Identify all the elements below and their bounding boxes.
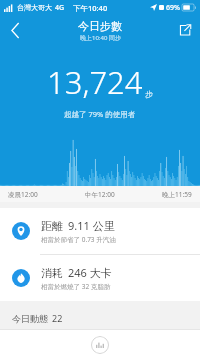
staticText: 距離: [41, 219, 63, 233]
staticText: 22: [52, 312, 63, 324]
staticText: 相當於節省了 0.73 升汽油: [41, 235, 116, 244]
button[interactable]: Calories: [0, 255, 200, 301]
staticText: 中午12:00: [85, 190, 115, 199]
staticText: 相當於燃燒了 32 克脂肪: [41, 282, 111, 291]
staticText: 下午10:40: [73, 3, 108, 13]
staticText: 4G: [55, 3, 65, 13]
other: 統計: [90, 336, 110, 354]
staticText: 13,724: [47, 61, 143, 103]
staticText: 超越了 79% 的使用者: [64, 109, 136, 119]
staticText: 246 大卡: [68, 265, 112, 280]
staticText: 晚上11:59: [162, 190, 192, 199]
staticText: 凌晨12:00: [8, 190, 38, 199]
staticText: 消耗: [41, 266, 63, 280]
button[interactable]: 統計: [80, 335, 120, 355]
button[interactable]: Distance: [0, 208, 200, 254]
staticText: 步: [145, 89, 153, 99]
staticText: 今日步數: [78, 19, 122, 33]
staticText: 晚上10:40 同步: [80, 34, 121, 42]
other: Calories: [12, 269, 30, 287]
other: Distance: [12, 222, 30, 240]
staticText: 9.11 公里: [68, 218, 115, 233]
button[interactable]: Share: [170, 15, 200, 45]
staticText: 69%: [166, 3, 180, 13]
staticText: 台灣大哥大: [17, 3, 52, 12]
staticText: 今日動態: [12, 313, 48, 324]
button[interactable]: Back: [0, 15, 30, 45]
button[interactable]: 今日動態: [0, 307, 200, 329]
